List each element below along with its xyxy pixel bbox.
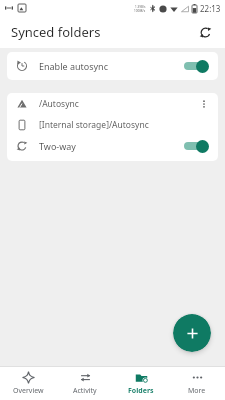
- staticText: 1.39B/s: [135, 5, 146, 9]
- button[interactable]: Activity: [57, 367, 113, 400]
- staticText: /Autosync: [39, 98, 194, 110]
- button[interactable]: Toggle on: [181, 138, 209, 154]
- button[interactable]: More: [169, 367, 225, 400]
- staticText: Activity: [73, 386, 97, 396]
- staticText: Overview: [13, 386, 44, 396]
- staticText: Synced folders: [11, 23, 101, 41]
- button[interactable]: Two-way: [7, 135, 218, 157]
- staticText: Folders: [128, 386, 154, 396]
- staticText: Enable autosync: [39, 60, 181, 72]
- button[interactable]: Enable autosync: [7, 52, 218, 80]
- button[interactable]: Folders: [113, 367, 169, 400]
- button[interactable]: [Internal storage]/Autosync: [7, 115, 218, 135]
- staticText: 22:13: [200, 3, 221, 14]
- button[interactable]: Add synced folder: [173, 314, 211, 352]
- staticText: More: [188, 386, 206, 396]
- button[interactable]: More options: [194, 94, 214, 114]
- button[interactable]: Sync now: [193, 20, 217, 44]
- staticText: 10088/s: [134, 9, 146, 13]
- staticText: Two-way: [39, 140, 181, 152]
- button[interactable]: /Autosync: [7, 93, 218, 115]
- button[interactable]: Overview: [0, 367, 57, 400]
- button[interactable]: Toggle on: [181, 58, 209, 74]
- staticText: [Internal storage]/Autosync: [39, 119, 149, 131]
